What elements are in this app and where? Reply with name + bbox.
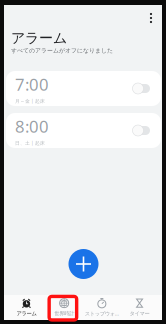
button[interactable]: ストップウォ… [83, 295, 121, 320]
staticText: アラーム [16, 310, 36, 317]
staticText: 日、土 | 起床 [15, 140, 45, 146]
button[interactable]: Add alarm [66, 247, 100, 281]
button[interactable]: 8:00 [6, 113, 161, 148]
button[interactable]: More options [143, 10, 159, 26]
staticText: ストップウォ… [85, 310, 119, 317]
button[interactable]: 7:00 [6, 71, 161, 106]
staticText: 世界時計 [54, 310, 74, 317]
button[interactable]: 世界時計 [45, 295, 83, 320]
staticText: 7:00 [15, 73, 49, 96]
button[interactable]: アラーム [8, 295, 45, 320]
staticText: すべてのアラームがオフになりました [11, 47, 113, 54]
button[interactable]: タイマー [121, 295, 158, 320]
staticText: 月～金 | 起床 [15, 98, 45, 104]
staticText: アラーム [11, 29, 67, 47]
staticText: タイマー [130, 310, 150, 317]
staticText: 8:00 [15, 115, 49, 138]
